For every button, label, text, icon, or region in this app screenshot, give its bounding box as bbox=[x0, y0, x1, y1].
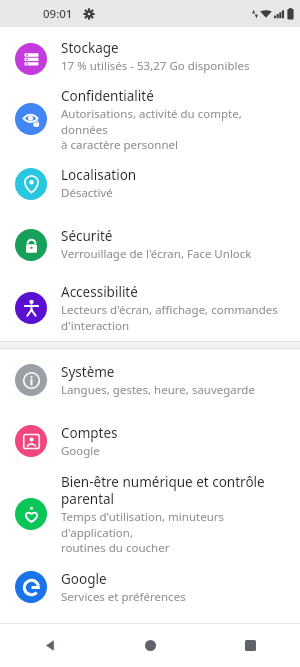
button[interactable]: Bien-être numérique et contrôle parental bbox=[0, 471, 300, 557]
button[interactable]: Comptes bbox=[0, 411, 300, 471]
staticText: Google bbox=[61, 443, 100, 459]
staticText: Système bbox=[61, 363, 115, 381]
staticText: Bien-être numérique et contrôle parental bbox=[61, 473, 265, 508]
staticText: Langues, gestes, heure, sauvegarde bbox=[61, 382, 255, 398]
button[interactable]: Back bbox=[0, 624, 100, 667]
staticText: Verrouillage de l'écran, Face Unlock bbox=[61, 246, 252, 262]
staticText: 17 % utilisés - 53,27 Go disponibles bbox=[61, 58, 250, 74]
staticText: Accessibilité bbox=[61, 283, 138, 301]
button[interactable]: Google bbox=[0, 557, 300, 617]
staticText: Google bbox=[61, 570, 107, 588]
staticText: Désactivé bbox=[61, 185, 113, 201]
staticText: Autorisations, activité du compte, donné… bbox=[61, 106, 290, 152]
staticText: Localisation bbox=[61, 166, 137, 184]
staticText: Lecteurs d'écran, affichage, commandes d… bbox=[61, 302, 278, 333]
staticText: Services et préférences bbox=[61, 589, 186, 605]
staticText: 09:01 bbox=[43, 6, 73, 22]
button[interactable]: Stockage bbox=[0, 27, 300, 85]
staticText: Stockage bbox=[61, 39, 119, 57]
button[interactable]: Recent apps bbox=[200, 624, 300, 667]
staticText: Comptes bbox=[61, 424, 118, 442]
button[interactable]: Sécurité bbox=[0, 214, 300, 275]
staticText: Confidentialité bbox=[61, 87, 154, 105]
button[interactable]: Home bbox=[100, 624, 200, 667]
staticText: Temps d'utilisation, minuteurs d'applica… bbox=[61, 509, 290, 555]
button[interactable]: Système bbox=[0, 349, 300, 411]
button[interactable]: Localisation bbox=[0, 153, 300, 214]
button[interactable]: Accessibilité bbox=[0, 275, 300, 341]
staticText: Sécurité bbox=[61, 227, 113, 245]
button[interactable]: Confidentialité bbox=[0, 85, 300, 153]
